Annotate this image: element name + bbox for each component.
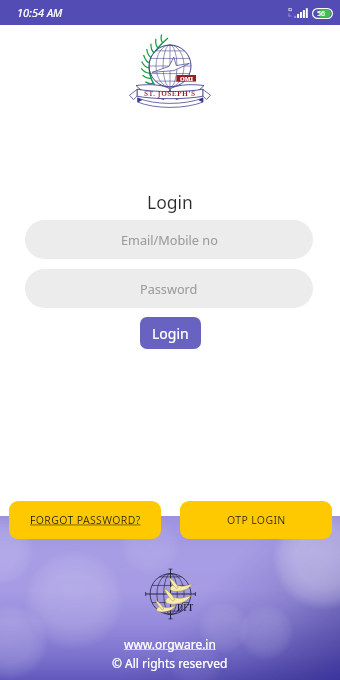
staticText: 10:54 AM [17, 5, 63, 20]
staticText: DFT [177, 602, 194, 613]
button[interactable]: OTP LOGIN [180, 501, 332, 539]
staticText: Email/Mobile no [121, 231, 218, 248]
staticText: © All rights reserved [112, 655, 228, 671]
staticText: 56 [317, 9, 326, 19]
button[interactable]: FORGOT PASSWORD? [9, 501, 161, 539]
button[interactable]: Email/Mobile no [25, 220, 313, 259]
staticText: OTP LOGIN [227, 513, 286, 527]
staticText: Password [140, 280, 198, 297]
button[interactable]: www.orgware.in [124, 636, 216, 652]
staticText: Login [152, 324, 189, 343]
staticText: FORGOT PASSWORD? [30, 513, 141, 527]
button[interactable]: Login [140, 317, 201, 349]
staticText: Login [0, 190, 340, 214]
staticText: ST. JOSEPH'S [144, 88, 196, 98]
button[interactable]: Password [25, 269, 313, 308]
staticText: OMI [180, 75, 193, 82]
